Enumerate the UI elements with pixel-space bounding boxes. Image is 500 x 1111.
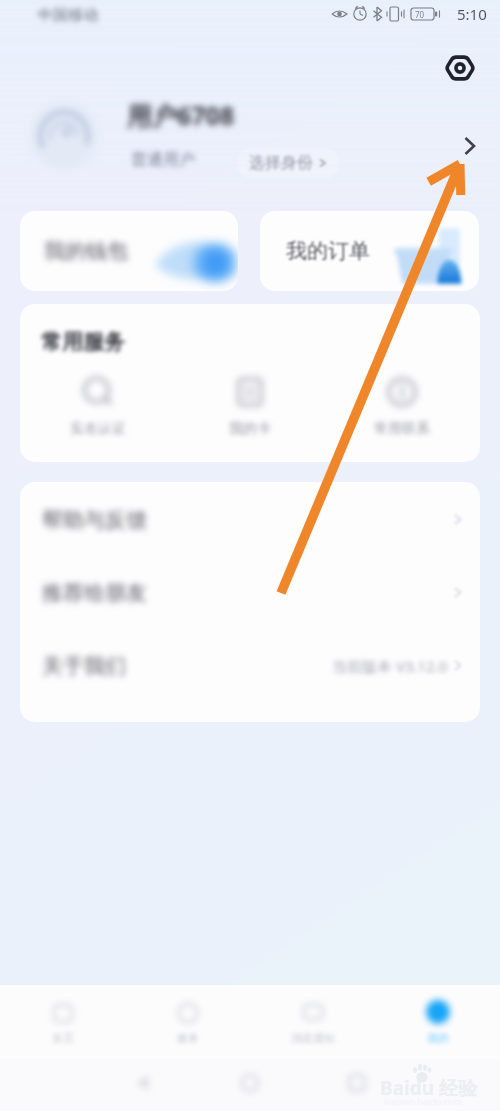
- button[interactable]: 关于我们: [20, 629, 480, 702]
- button[interactable]: 服务: [125, 985, 250, 1059]
- button[interactable]: 实名认证: [22, 372, 174, 438]
- staticText: 我的: [427, 1031, 449, 1045]
- button[interactable]: 帮助与反馈: [20, 483, 480, 556]
- staticText: 关于我们: [42, 653, 126, 679]
- staticText: 我的卡: [229, 420, 271, 438]
- button[interactable]: 推荐给朋友: [20, 556, 480, 629]
- staticText: 消息通知: [291, 1031, 335, 1045]
- button[interactable]: Settings: [443, 51, 477, 85]
- staticText: Baidu 经验: [380, 1075, 477, 1101]
- button[interactable]: 我的: [375, 985, 500, 1059]
- button[interactable]: 我的钱包: [20, 211, 238, 291]
- button[interactable]: 我的卡: [174, 372, 326, 438]
- button[interactable]: Back: [117, 1059, 169, 1111]
- staticText: 用户6708: [127, 98, 235, 132]
- button[interactable]: 常用联系: [326, 372, 478, 438]
- staticText: 中国移动: [38, 4, 102, 24]
- staticText: 帮助与反馈: [42, 507, 147, 533]
- staticText: 我的钱包: [44, 238, 128, 264]
- staticText: 普通用户: [131, 150, 195, 170]
- staticText: 常用服务: [41, 329, 125, 355]
- staticText: 服务: [177, 1031, 199, 1045]
- staticText: 实名认证: [70, 420, 126, 438]
- staticText: 当前版本 V3.12.0: [332, 656, 448, 676]
- button[interactable]: 首页: [0, 985, 125, 1059]
- staticText: 常用联系: [374, 420, 430, 438]
- button[interactable]: 消息通知: [250, 985, 375, 1059]
- button[interactable]: Home: [224, 1059, 276, 1111]
- staticText: 选择身份: [249, 153, 313, 173]
- button[interactable]: 我的订单: [260, 211, 479, 291]
- staticText: 推荐给朋友: [42, 580, 147, 606]
- staticText: 70: [415, 9, 425, 20]
- staticText: jingyan.baidu.com: [384, 1095, 462, 1105]
- staticText: 5:10: [457, 4, 487, 24]
- staticText: 首页: [52, 1031, 74, 1045]
- staticText: 我的订单: [286, 238, 370, 264]
- button[interactable]: Profile details: [452, 128, 488, 164]
- button[interactable]: Recents: [331, 1059, 383, 1111]
- button[interactable]: 选择身份: [238, 148, 338, 178]
